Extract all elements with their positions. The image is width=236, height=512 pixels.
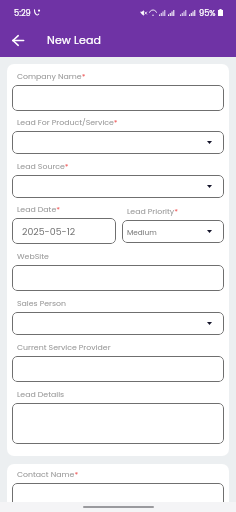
staticText: Lead Priority* <box>127 206 178 217</box>
staticText: Company Name* <box>17 71 86 82</box>
staticText: Lead Details <box>17 389 65 400</box>
button[interactable] <box>12 356 224 382</box>
staticText: 5:29 <box>14 7 31 18</box>
staticText: Lead For Product/Service* <box>17 117 118 128</box>
staticText: Sales Person <box>17 298 67 309</box>
button[interactable] <box>12 483 224 509</box>
button[interactable]: Back <box>7 29 29 51</box>
staticText: Medium <box>127 227 157 237</box>
button[interactable] <box>12 131 224 154</box>
staticText: Lead Source* <box>17 161 69 172</box>
button[interactable] <box>12 265 224 291</box>
button[interactable] <box>12 85 224 111</box>
button[interactable] <box>12 175 224 198</box>
staticText: New Lead <box>47 32 102 47</box>
staticText: WebSite <box>17 251 49 262</box>
staticText: Lead Date* <box>17 204 61 215</box>
staticText: 95% <box>199 7 216 18</box>
button[interactable]: 2025-05-12 <box>12 218 116 244</box>
button[interactable] <box>12 403 224 444</box>
staticText: 2025-05-12 <box>22 225 76 238</box>
staticText: Current Service Provider <box>17 342 111 353</box>
staticText: Contact Name* <box>17 469 79 480</box>
button[interactable] <box>12 312 224 335</box>
button[interactable]: Medium <box>122 220 224 243</box>
